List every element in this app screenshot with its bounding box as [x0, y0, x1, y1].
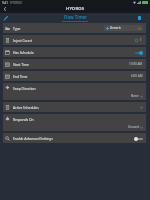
button[interactable]: Switch on [134, 50, 143, 55]
staticText: Start Time [13, 62, 29, 66]
staticText: None [131, 94, 139, 98]
button[interactable]: Active Schedules [3, 102, 146, 112]
button[interactable]: Switch off [134, 136, 143, 141]
button[interactable]: End Time [3, 71, 146, 81]
staticText: Generic [110, 26, 121, 30]
staticText: Has Schedule [13, 50, 34, 54]
button[interactable]: Inject count [135, 38, 143, 42]
button[interactable]: Generic [104, 25, 143, 31]
button[interactable]: Edit [2, 15, 9, 22]
staticText: Inject Count [13, 38, 32, 42]
button[interactable]: Responds On [3, 114, 146, 131]
button[interactable]: Flow Timer [62, 14, 88, 22]
staticText: End Time [13, 74, 28, 78]
staticText: Responds On [13, 117, 34, 121]
button[interactable]: More options [138, 16, 141, 20]
staticText: Snap Direction [13, 86, 36, 90]
staticText: 9:41 [2, 1, 8, 5]
staticText: Enable Advanced Settings [13, 136, 53, 140]
staticText: Active Schedules [13, 105, 39, 109]
staticText: Unused [128, 125, 139, 129]
button[interactable]: Type [3, 23, 146, 33]
staticText: 10:00 AM [129, 62, 143, 66]
staticText: Flow Timer [64, 14, 87, 20]
button[interactable]: Enable Advanced Settings [3, 133, 146, 143]
button[interactable]: Inject Count [3, 35, 146, 45]
button[interactable]: Start Time [3, 59, 146, 69]
staticText: HYDROS [10, 1, 22, 5]
staticText: HYDROS [66, 6, 85, 12]
staticText: Type [13, 26, 21, 30]
button[interactable]: Back [1, 5, 8, 12]
staticText: 1 [140, 38, 142, 42]
staticText: 6:00 AM [131, 74, 143, 78]
button[interactable]: Has Schedule [3, 47, 146, 57]
button[interactable]: Snap Direction [3, 83, 146, 100]
